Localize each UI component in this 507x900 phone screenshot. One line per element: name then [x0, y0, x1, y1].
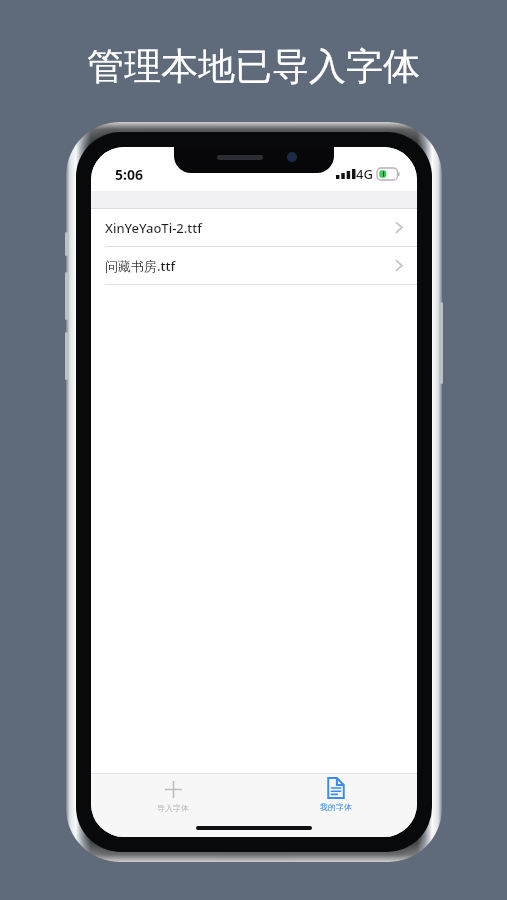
staticText: XinYeYaoTi-2.ttf	[105, 219, 395, 237]
staticText: 我的字体	[320, 802, 352, 812]
other: My fonts	[327, 777, 345, 799]
button[interactable]: XinYeYaoTi-2.ttf	[91, 209, 417, 246]
staticText: 导入字体	[157, 803, 189, 813]
staticText: 5:06	[115, 165, 143, 184]
staticText: 问藏书房.ttf	[105, 257, 395, 275]
button[interactable]: Import font	[91, 774, 254, 820]
button[interactable]: My fonts	[254, 774, 417, 820]
other: Import font	[164, 780, 183, 799]
staticText: 4G	[356, 165, 373, 183]
staticText: 管理本地已导入字体	[87, 43, 420, 90]
button[interactable]: 问藏书房.ttf	[91, 247, 417, 284]
